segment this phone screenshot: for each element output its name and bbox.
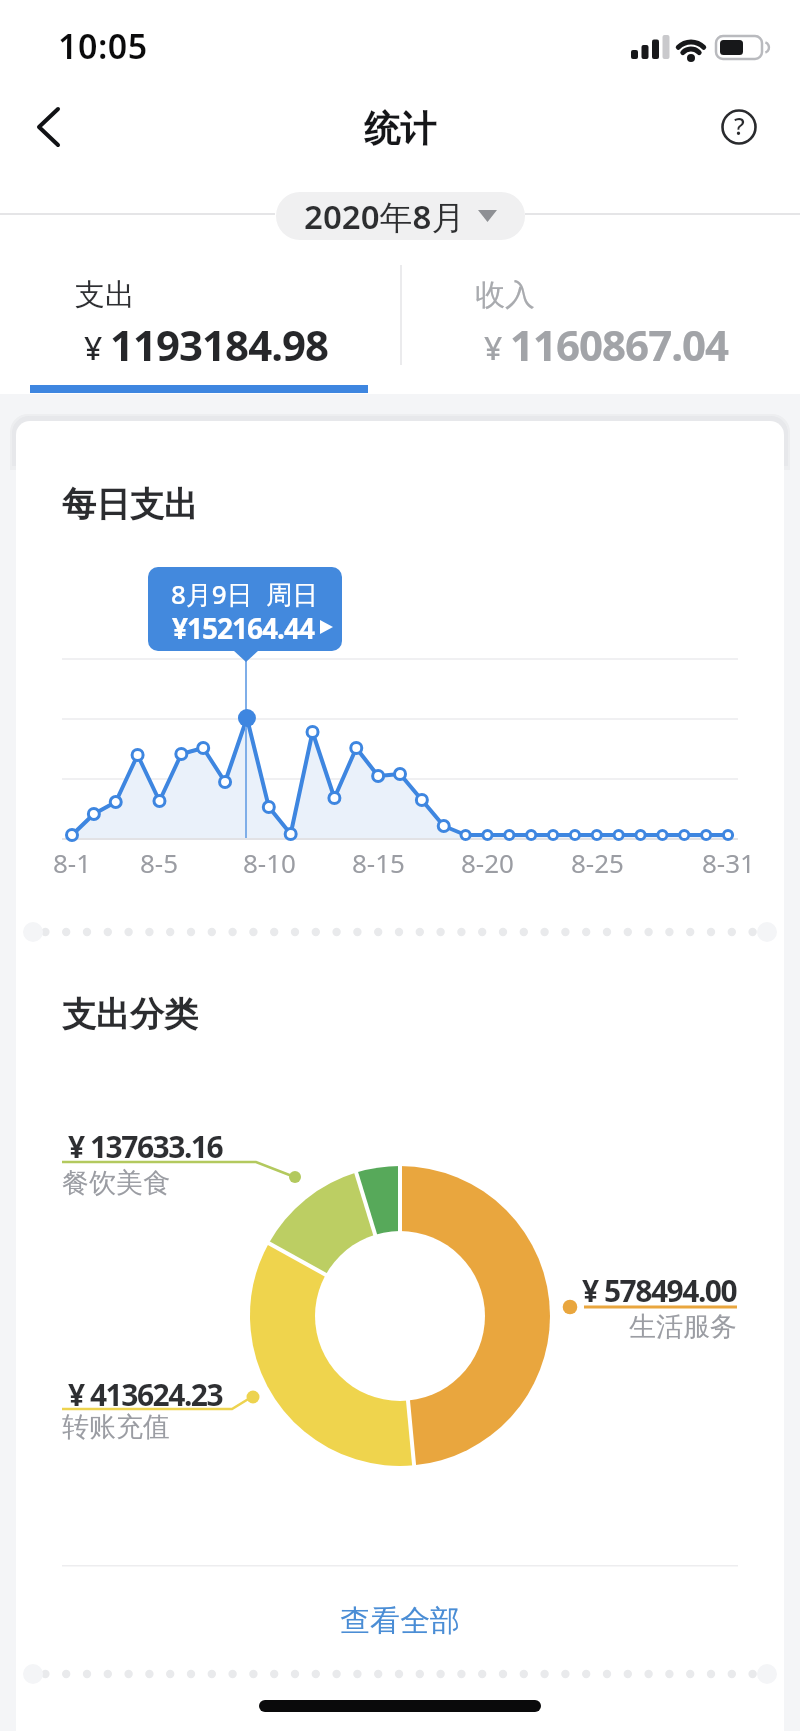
- staticText: 每日支出: [62, 483, 198, 526]
- button[interactable]: [148, 567, 342, 651]
- staticText: 8-1: [53, 845, 92, 880]
- button[interactable]: [430, 260, 770, 385]
- staticText: 8-31: [702, 845, 755, 880]
- staticText: 8-15: [352, 845, 405, 880]
- button[interactable]: 2020年8月: [276, 192, 525, 240]
- staticText: 10:05: [58, 23, 148, 69]
- staticText: ¥: [84, 326, 103, 370]
- staticText: 8-5: [140, 845, 179, 880]
- staticText: 生活服务: [629, 1310, 737, 1344]
- staticText: ¥ 578494.00: [582, 1270, 737, 1311]
- staticText: ¥ 137633.16: [68, 1126, 223, 1167]
- staticText: ¥152164.44: [172, 609, 315, 647]
- button[interactable]: [30, 260, 370, 385]
- staticText: 统计: [364, 106, 436, 151]
- staticText: 8-25: [571, 845, 624, 880]
- staticText: 2020年8月: [304, 194, 465, 239]
- staticText: 支出分类: [62, 993, 198, 1036]
- staticText: 8月9日 周日: [171, 576, 319, 612]
- staticText: 收入: [475, 276, 535, 314]
- staticText: 8-20: [461, 845, 514, 880]
- staticText: 8-10: [243, 845, 296, 880]
- staticText: ?: [734, 109, 745, 142]
- button[interactable]: [26, 100, 76, 150]
- staticText: 转账充值: [62, 1410, 170, 1444]
- staticText: ¥ 413624.23: [68, 1374, 223, 1415]
- staticText: ¥: [484, 326, 503, 370]
- staticText: 查看全部: [340, 1602, 460, 1640]
- button[interactable]: 查看全部: [332, 1594, 468, 1648]
- button[interactable]: ?: [716, 104, 762, 150]
- staticText: 1193184.98: [110, 316, 329, 373]
- staticText: 餐饮美食: [62, 1166, 170, 1200]
- staticText: 1160867.04: [510, 316, 729, 373]
- staticText: 支出: [75, 276, 135, 314]
